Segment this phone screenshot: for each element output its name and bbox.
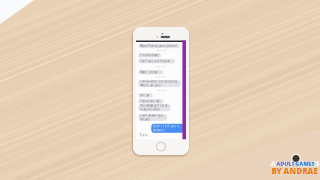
staticText: ADULT GAMES xyxy=(276,160,314,167)
staticText: I will answer your phone xyxy=(140,114,165,117)
staticText: You always get up at 7 to get xyxy=(140,104,169,107)
staticText: BY ANDRAE xyxy=(271,166,317,176)
staticText: Can't you just forgive me? xyxy=(140,59,173,63)
staticText: didn't I tell you not to text me xyxy=(153,125,182,128)
staticText: ADULT GAMES xyxy=(271,159,320,168)
staticText: already xyxy=(140,118,149,121)
staticText: See ya! xyxy=(140,93,149,97)
staticText: BY ANDRAE xyxy=(271,166,317,176)
staticText: I'm sorry babe xyxy=(140,53,159,57)
staticText: I know we're not sleeping. xyxy=(140,80,178,83)
staticText: Mom: Pick up your phone! xyxy=(140,44,177,48)
staticText: I know you are... xyxy=(140,99,162,103)
staticText: Today 7:14 AM xyxy=(155,66,165,68)
staticText: Thanks xyxy=(139,133,147,137)
staticText: Today 7:14 AM xyxy=(155,89,165,91)
staticText: Babe, please... xyxy=(140,70,161,74)
staticText: Where are you? xyxy=(140,84,161,87)
staticText: ready for work xyxy=(140,108,159,111)
staticText: anymore? xyxy=(153,128,165,132)
staticText: Today 7:14 AM xyxy=(155,49,165,51)
